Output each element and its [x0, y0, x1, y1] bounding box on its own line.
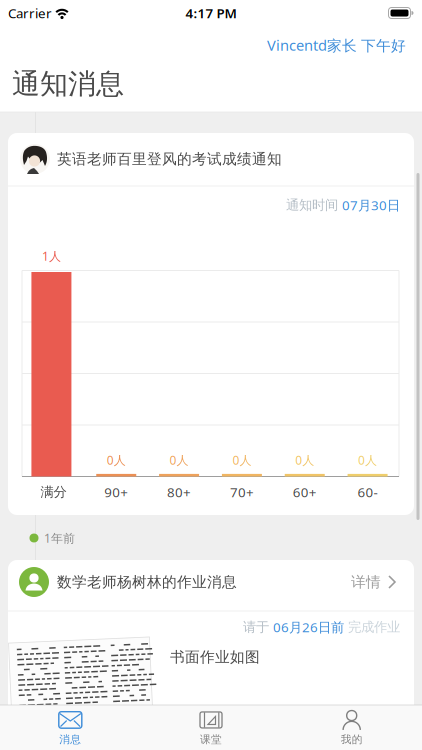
- staticText: 消息: [59, 733, 81, 746]
- staticText: 1人: [42, 248, 61, 264]
- staticText: 0人: [232, 452, 251, 468]
- staticText: 书面作业如图: [170, 648, 260, 666]
- staticText: Carrier: [8, 4, 52, 22]
- staticText: 1年前: [44, 530, 75, 546]
- staticText: 0人: [358, 452, 377, 468]
- staticText: 0人: [107, 452, 126, 468]
- staticText: 4:17 PM: [185, 4, 236, 22]
- staticText: 06月26日前: [273, 618, 344, 636]
- staticText: 0人: [295, 452, 314, 468]
- button[interactable]: 课堂: [151, 705, 271, 750]
- staticText: 07月30日: [342, 196, 400, 214]
- button[interactable]: 消息: [10, 705, 130, 750]
- staticText: 0人: [170, 452, 189, 468]
- staticText: 60+: [293, 483, 317, 501]
- staticText: 英语老师百里登风的考试成绩通知: [57, 150, 282, 168]
- staticText: 请于: [243, 619, 273, 635]
- staticText: 80+: [167, 483, 191, 501]
- staticText: 60-: [358, 483, 378, 501]
- staticText: 90+: [104, 483, 128, 501]
- staticText: 70+: [230, 483, 254, 501]
- staticText: 详情: [351, 573, 381, 591]
- staticText: 我的: [341, 733, 363, 746]
- button[interactable]: 详情: [351, 573, 397, 591]
- button[interactable]: 我的: [292, 705, 412, 750]
- staticText: 课堂: [200, 733, 222, 746]
- staticText: 完成作业: [344, 619, 400, 635]
- staticText: 满分: [40, 484, 66, 500]
- staticText: 通知时间: [286, 197, 342, 213]
- button[interactable]: 作业图片: [10, 640, 151, 710]
- staticText: 数学老师杨树林的作业消息: [57, 573, 237, 591]
- staticText: Vincentd家长 下午好: [267, 35, 406, 55]
- staticText: 通知消息: [12, 67, 124, 101]
